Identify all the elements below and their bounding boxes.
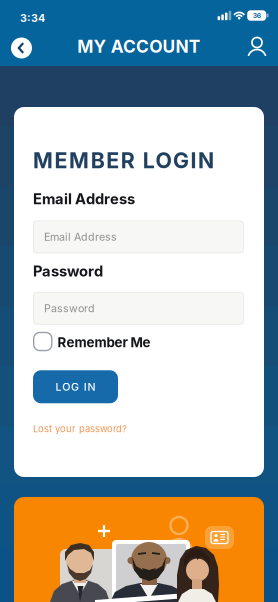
staticText: LOG IN xyxy=(55,380,95,393)
staticText: 36 xyxy=(253,12,261,19)
staticText: Email Address xyxy=(33,190,135,207)
staticText: Password xyxy=(33,262,103,280)
staticText: Email Address xyxy=(44,231,117,243)
staticText: Password xyxy=(44,302,95,315)
staticText: MY ACCOUNT xyxy=(77,36,201,57)
button[interactable]: Back xyxy=(11,37,32,58)
staticText: Lost your password? xyxy=(33,423,127,434)
button[interactable]: Password xyxy=(33,292,244,325)
button[interactable]: Membership cards xyxy=(14,497,264,602)
button[interactable]: Lost your password? xyxy=(33,423,127,434)
staticText: 3:34 xyxy=(20,12,45,24)
staticText: Remember Me xyxy=(57,335,150,350)
button[interactable]: Account xyxy=(247,37,267,59)
button[interactable]: LOG IN xyxy=(33,370,118,403)
staticText: MEMBER LOGIN xyxy=(33,148,214,173)
button[interactable]: Email Address xyxy=(33,220,244,253)
button[interactable]: Remember Me xyxy=(33,332,150,351)
